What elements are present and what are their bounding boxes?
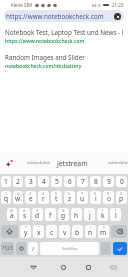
button[interactable]: '	[46, 225, 57, 238]
staticText: s	[23, 211, 27, 220]
staticText: 5	[55, 191, 58, 196]
staticText: w	[15, 194, 21, 203]
button[interactable]: !	[85, 225, 96, 238]
staticText: Notebook Test, Laptop Test und News - No…	[5, 28, 123, 37]
staticText: b	[75, 228, 80, 237]
button[interactable]: ?123	[1, 242, 14, 255]
button[interactable]: @	[7, 208, 17, 221]
button[interactable]: ?	[98, 225, 109, 238]
button[interactable]: Backspace	[111, 225, 127, 238]
button[interactable]: 7	[77, 191, 88, 204]
staticText: _	[50, 208, 52, 213]
button[interactable]: Shift	[1, 225, 18, 238]
button[interactable]: 9	[103, 191, 114, 204]
button[interactable]: 9	[103, 176, 114, 187]
button[interactable]: https://www.notebookcheck.com	[4, 10, 124, 22]
staticText: o	[107, 194, 111, 203]
staticText: /	[32, 245, 35, 253]
staticText: f	[49, 211, 52, 220]
staticText: +	[88, 208, 91, 213]
button[interactable]: Jetstream	[57, 159, 88, 168]
staticText: -	[76, 208, 78, 213]
staticText: h	[74, 211, 79, 220]
staticText: z	[68, 194, 72, 203]
button[interactable]: 7	[77, 176, 88, 187]
staticText: 3	[29, 177, 33, 186]
button[interactable]: -	[71, 208, 82, 221]
button[interactable]: 3	[25, 176, 36, 187]
button[interactable]: (	[97, 208, 108, 221]
staticText: l	[115, 211, 117, 220]
staticText: https://www.notebookcheck.com	[5, 38, 85, 45]
staticText: (	[102, 208, 104, 213]
button[interactable]: Recent apps	[81, 260, 95, 274]
button[interactable]: 4	[38, 176, 49, 187]
button[interactable]: 8	[90, 176, 101, 187]
staticText: #	[23, 208, 26, 213]
button[interactable]: 5	[51, 176, 62, 187]
button[interactable]: 2	[13, 176, 23, 187]
button[interactable]: 0	[116, 176, 127, 187]
staticText: Random Images and Slider	[5, 53, 85, 62]
button[interactable]: 2	[13, 191, 23, 204]
staticText: ?	[103, 225, 105, 230]
staticText: g	[61, 211, 66, 220]
staticText: !	[90, 225, 91, 230]
button[interactable]: 4	[38, 191, 49, 204]
staticText: 5	[55, 177, 59, 186]
staticText: notebookcheck.com/nbcbattery	[5, 63, 82, 70]
button[interactable]: Clear text	[114, 13, 121, 20]
staticText: *	[25, 225, 27, 230]
button[interactable]: Home	[56, 260, 70, 274]
staticText: d	[35, 211, 40, 220]
staticText: 0	[120, 177, 124, 186]
staticText: v	[63, 228, 67, 237]
button[interactable]: 1	[1, 176, 11, 187]
button[interactable]: 5	[51, 191, 62, 204]
button[interactable]: "	[33, 225, 44, 238]
button[interactable]: 6	[64, 191, 75, 204]
button[interactable]: $	[32, 208, 43, 221]
button[interactable]: )	[110, 208, 121, 221]
button[interactable]: :	[59, 225, 70, 238]
staticText: $	[36, 208, 39, 213]
staticText: )	[115, 208, 117, 213]
staticText: :	[64, 225, 65, 230]
button[interactable]: _	[45, 208, 56, 221]
staticText: '	[51, 225, 52, 230]
button[interactable]: Space	[40, 242, 99, 255]
button[interactable]: Notebook Test, Laptop Test und News - No…	[0, 28, 128, 45]
staticText: 1	[5, 191, 8, 196]
button[interactable]: 8	[90, 191, 101, 204]
button[interactable]: Random Images and Slider	[0, 53, 128, 70]
staticText: 6	[68, 177, 72, 186]
staticText: c	[50, 228, 54, 237]
button[interactable]: Go	[113, 242, 127, 255]
button[interactable]: ;	[72, 225, 83, 238]
button[interactable]: notebookcheck.com	[108, 161, 128, 165]
staticText: 8	[94, 177, 98, 186]
button[interactable]: Back	[26, 260, 40, 274]
button[interactable]: 3	[25, 191, 36, 204]
button[interactable]: /	[28, 242, 38, 255]
button[interactable]: .	[101, 242, 111, 255]
button[interactable]: +	[84, 208, 95, 221]
button[interactable]: Screenshot	[106, 260, 120, 274]
button[interactable]: 6	[64, 176, 75, 187]
button[interactable]: Voice input	[5, 159, 14, 168]
staticText: 7	[81, 177, 85, 186]
staticText: https://www.notebookcheck.com	[6, 12, 104, 21]
button[interactable]: &	[58, 208, 69, 221]
staticText: m	[100, 228, 107, 237]
staticText: i	[95, 194, 97, 203]
button[interactable]: #	[19, 208, 30, 221]
staticText: u	[80, 194, 85, 203]
button[interactable]: 1	[1, 191, 11, 204]
staticText: 9	[107, 191, 110, 196]
button[interactable]: notebookcheck	[27, 161, 50, 165]
button[interactable]: 0	[116, 191, 127, 204]
staticText: y	[24, 228, 28, 237]
button[interactable]: *	[20, 225, 31, 238]
staticText: r	[42, 194, 45, 203]
button[interactable]: Emoji	[16, 242, 26, 255]
